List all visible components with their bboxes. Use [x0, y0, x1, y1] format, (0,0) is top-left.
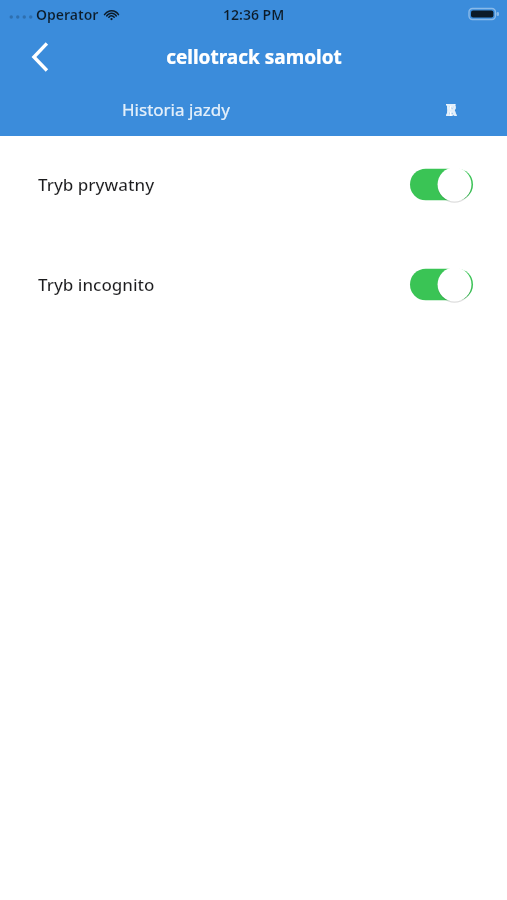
button[interactable]: Tryb prywatny: [0, 162, 507, 206]
button[interactable]: Historia jazdy: [0, 86, 429, 136]
staticText: Tryb prywatny: [38, 173, 410, 196]
button[interactable]: Toggle: [410, 167, 473, 202]
staticText: Operator: [36, 5, 99, 24]
staticText: Historia jazdy: [122, 98, 230, 121]
button[interactable]: Tryb incognito: [0, 262, 507, 306]
staticText: cellotrack samolot: [166, 44, 342, 70]
staticText: Tryb incognito: [38, 273, 410, 296]
staticText: 12:36 PM: [223, 5, 285, 24]
button[interactable]: Back: [18, 35, 62, 79]
button[interactable]: Toggle: [410, 267, 473, 302]
